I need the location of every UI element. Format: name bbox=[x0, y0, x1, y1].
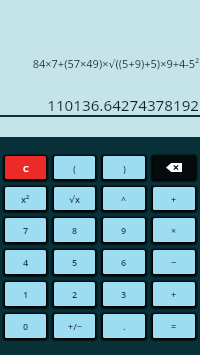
button[interactable]: 8 bbox=[54, 218, 95, 242]
button[interactable]: 3 bbox=[103, 282, 145, 306]
button[interactable]: − bbox=[153, 250, 195, 274]
staticText: ^ bbox=[121, 193, 127, 205]
staticText: 0 bbox=[23, 320, 29, 332]
staticText: ) bbox=[123, 162, 126, 174]
button[interactable]: 0 bbox=[5, 314, 46, 338]
button[interactable]: × bbox=[153, 218, 195, 242]
button[interactable]: 5 bbox=[54, 250, 95, 274]
staticText: x² bbox=[21, 193, 30, 205]
staticText: 5 bbox=[72, 256, 78, 268]
button[interactable]: + bbox=[153, 187, 195, 210]
staticText: = bbox=[171, 320, 177, 332]
button[interactable]: √x bbox=[54, 187, 95, 210]
button[interactable]: C bbox=[5, 156, 46, 179]
button[interactable]: = bbox=[153, 314, 195, 338]
button[interactable]: ( bbox=[54, 156, 95, 179]
staticText: 3 bbox=[121, 288, 127, 300]
staticText: 110136.64274378192 bbox=[0, 95, 199, 116]
staticText: + bbox=[171, 288, 177, 300]
button[interactable]: ^ bbox=[103, 187, 145, 210]
button[interactable]: 2 bbox=[54, 282, 95, 306]
button[interactable]: 6 bbox=[103, 250, 145, 274]
staticText: √x bbox=[69, 193, 81, 205]
button[interactable]: 4 bbox=[5, 250, 46, 274]
staticText: 4 bbox=[23, 256, 29, 268]
button[interactable]: . bbox=[103, 314, 145, 338]
button[interactable]: 9 bbox=[103, 218, 145, 242]
staticText: +/− bbox=[68, 320, 82, 332]
button[interactable]: 1 bbox=[5, 282, 46, 306]
staticText: − bbox=[171, 256, 177, 268]
button[interactable]: 7 bbox=[5, 218, 46, 242]
button[interactable]: x² bbox=[5, 187, 46, 210]
staticText: . bbox=[123, 320, 126, 332]
staticText: 1 bbox=[23, 288, 29, 300]
staticText: + bbox=[171, 193, 177, 205]
staticText: 9 bbox=[121, 224, 127, 236]
staticText: 8 bbox=[72, 224, 78, 236]
staticText: C bbox=[23, 162, 29, 174]
button[interactable]: ) bbox=[103, 156, 145, 179]
staticText: × bbox=[171, 224, 177, 236]
staticText: ( bbox=[73, 162, 76, 174]
staticText: 84×7+(57×49)×√((5+9)+5)×9+4-5² bbox=[0, 56, 199, 71]
button[interactable]: + bbox=[153, 282, 195, 306]
button[interactable]: +/− bbox=[54, 314, 95, 338]
staticText: 6 bbox=[121, 256, 127, 268]
staticText: 2 bbox=[72, 288, 78, 300]
staticText: 7 bbox=[23, 224, 29, 236]
button[interactable]: Delete bbox=[153, 156, 195, 179]
